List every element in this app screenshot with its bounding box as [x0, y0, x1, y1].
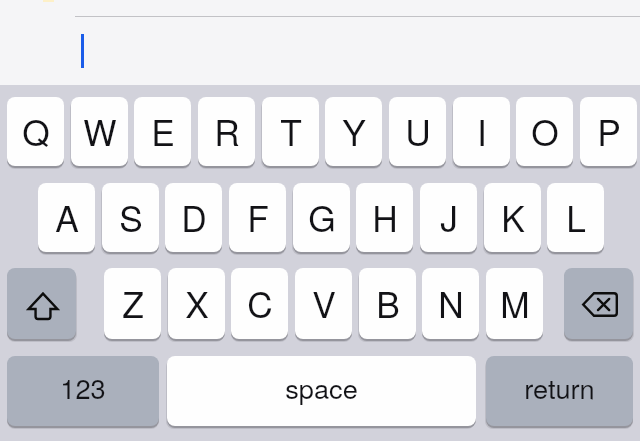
button[interactable]: A: [38, 183, 95, 252]
staticText: O: [531, 105, 559, 156]
staticText: F: [247, 191, 269, 242]
button[interactable]: V: [295, 268, 352, 339]
button[interactable]: Backspace: [564, 268, 633, 339]
button[interactable]: O: [516, 97, 573, 166]
button[interactable]: C: [231, 268, 288, 339]
staticText: N: [438, 277, 464, 328]
button[interactable]: Shift: [7, 268, 76, 339]
staticText: X: [185, 277, 209, 328]
staticText: J: [440, 191, 458, 242]
button[interactable]: I: [453, 97, 510, 166]
staticText: T: [280, 105, 302, 156]
staticText: Y: [342, 105, 366, 156]
staticText: G: [308, 191, 336, 242]
button[interactable]: W: [71, 97, 128, 166]
button[interactable]: N: [422, 268, 479, 339]
staticText: W: [83, 105, 117, 156]
button[interactable]: Y: [325, 97, 382, 166]
staticText: C: [247, 277, 273, 328]
button[interactable]: T: [262, 97, 319, 166]
staticText: V: [312, 277, 336, 328]
button[interactable]: S: [102, 183, 159, 252]
staticText: R: [214, 105, 240, 156]
staticText: I: [477, 105, 487, 156]
button[interactable]: D: [165, 183, 222, 252]
button[interactable]: H: [356, 183, 413, 252]
button[interactable]: K: [484, 183, 541, 252]
staticText: P: [597, 105, 621, 156]
staticText: M: [500, 277, 530, 328]
button[interactable]: B: [359, 268, 416, 339]
staticText: K: [501, 191, 525, 242]
button[interactable]: return: [486, 356, 633, 426]
button[interactable]: U: [389, 97, 446, 166]
staticText: return: [524, 368, 595, 407]
button[interactable]: space: [167, 356, 476, 426]
staticText: Z: [122, 277, 144, 328]
staticText: H: [372, 191, 398, 242]
staticText: S: [119, 191, 143, 242]
button[interactable]: P: [580, 97, 637, 166]
button[interactable]: X: [168, 268, 225, 339]
button[interactable]: L: [547, 183, 604, 252]
button[interactable]: F: [229, 183, 286, 252]
staticText: D: [181, 191, 207, 242]
button[interactable]: R: [198, 97, 255, 166]
button[interactable]: Message input field: [0, 17, 640, 85]
staticText: Q: [22, 105, 50, 156]
button[interactable]: G: [293, 183, 350, 252]
staticText: B: [376, 277, 400, 328]
staticText: 123: [60, 368, 106, 407]
staticText: E: [151, 105, 175, 156]
staticText: L: [566, 191, 586, 242]
button[interactable]: 123: [7, 356, 159, 426]
staticText: space: [285, 368, 358, 407]
button[interactable]: E: [134, 97, 191, 166]
button[interactable]: Q: [7, 97, 64, 166]
button[interactable]: J: [420, 183, 477, 252]
button[interactable]: Z: [104, 268, 161, 339]
staticText: A: [55, 191, 79, 242]
button[interactable]: M: [486, 268, 543, 339]
staticText: U: [405, 105, 431, 156]
